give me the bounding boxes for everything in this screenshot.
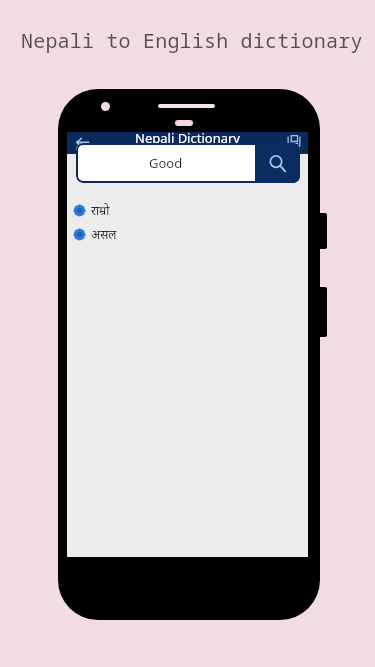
staticText: Nepali to English dictionary	[21, 27, 363, 54]
button[interactable]: Good	[76, 143, 255, 183]
button[interactable]: Share	[280, 132, 308, 154]
button[interactable]: राम्रो	[67, 198, 308, 222]
staticText: राम्रो	[91, 202, 110, 218]
button[interactable]: Back	[67, 132, 97, 154]
staticText: Good	[149, 154, 183, 172]
staticText: असल	[91, 226, 117, 242]
staticText: Nepali Dictionary	[135, 129, 240, 147]
button[interactable]: असल	[67, 222, 308, 246]
button[interactable]: Search	[255, 143, 300, 183]
